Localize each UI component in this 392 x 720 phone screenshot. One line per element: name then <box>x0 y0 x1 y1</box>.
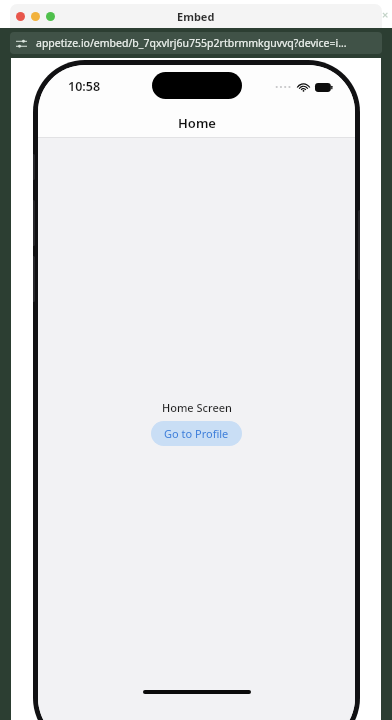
button[interactable]: Minimize window <box>31 12 40 21</box>
staticText: appetize.io/embed/b_7qxvlrj6u755p2rtbrmm… <box>36 36 347 50</box>
button[interactable]: Maximize window <box>46 12 55 21</box>
button[interactable]: Close <box>379 7 391 19</box>
button[interactable]: Go to Profile <box>151 421 242 446</box>
staticText: Home <box>178 114 216 132</box>
button[interactable]: Close window <box>16 12 25 21</box>
staticText: Go to Profile <box>164 426 229 441</box>
staticText: Embed <box>177 9 215 24</box>
staticText: 10:58 <box>68 78 101 95</box>
button[interactable]: appetize.io/embed/b_7qxvlrj6u755p2rtbrmm… <box>10 32 382 54</box>
staticText: × <box>382 7 389 19</box>
staticText: Home Screen <box>162 400 232 415</box>
